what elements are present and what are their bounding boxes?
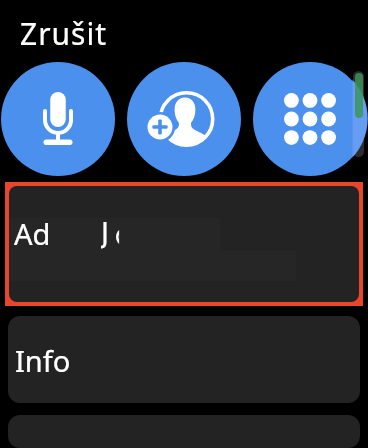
staticText: Zrušit xyxy=(20,13,108,54)
button[interactable]: Voice search xyxy=(1,62,115,176)
button[interactable] xyxy=(8,415,360,448)
staticText: Jo xyxy=(101,212,125,251)
button[interactable]: Zrušit xyxy=(0,0,368,62)
staticText: Info xyxy=(15,341,71,380)
button[interactable]: Scroll position xyxy=(353,71,364,157)
button[interactable]: Ad xyxy=(9,186,359,302)
button[interactable]: Dialpad xyxy=(253,62,367,176)
button[interactable]: Add contact xyxy=(127,62,241,176)
button[interactable]: Info xyxy=(8,316,360,403)
staticText: Ad xyxy=(14,214,51,253)
